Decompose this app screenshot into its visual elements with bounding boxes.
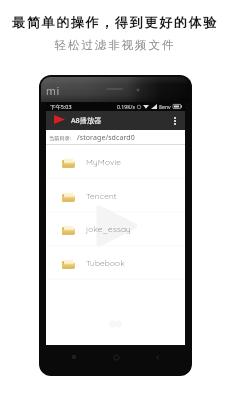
staticText: 下午5:03 xyxy=(50,103,72,110)
button[interactable]: Back xyxy=(151,351,163,363)
staticText: 0.19K/s xyxy=(117,103,135,110)
staticText: 当前目录: xyxy=(49,134,72,141)
button[interactable]: Menu xyxy=(68,351,80,363)
staticText: Tubebook xyxy=(86,258,125,268)
staticText: Tencent xyxy=(86,191,117,201)
staticText: 最简单的操作，得到更好的体验 xyxy=(5,14,225,30)
button[interactable]: MyMovie xyxy=(46,145,185,179)
button[interactable]: Tencent xyxy=(46,179,185,213)
staticText: 8env xyxy=(159,103,171,110)
staticText: mi xyxy=(46,84,60,98)
button[interactable]: Tubebook xyxy=(46,246,185,280)
button[interactable]: More options xyxy=(170,111,179,130)
staticText: joke_essay xyxy=(86,224,131,234)
button[interactable]: Home xyxy=(110,351,122,363)
staticText: 轻松过滤非视频文件 xyxy=(5,38,225,52)
staticText: /storage/sdcard0 xyxy=(77,133,135,143)
button[interactable]: joke_essay xyxy=(46,212,185,246)
staticText: A8播放器 xyxy=(71,115,102,125)
staticText: MyMovie xyxy=(86,157,122,167)
